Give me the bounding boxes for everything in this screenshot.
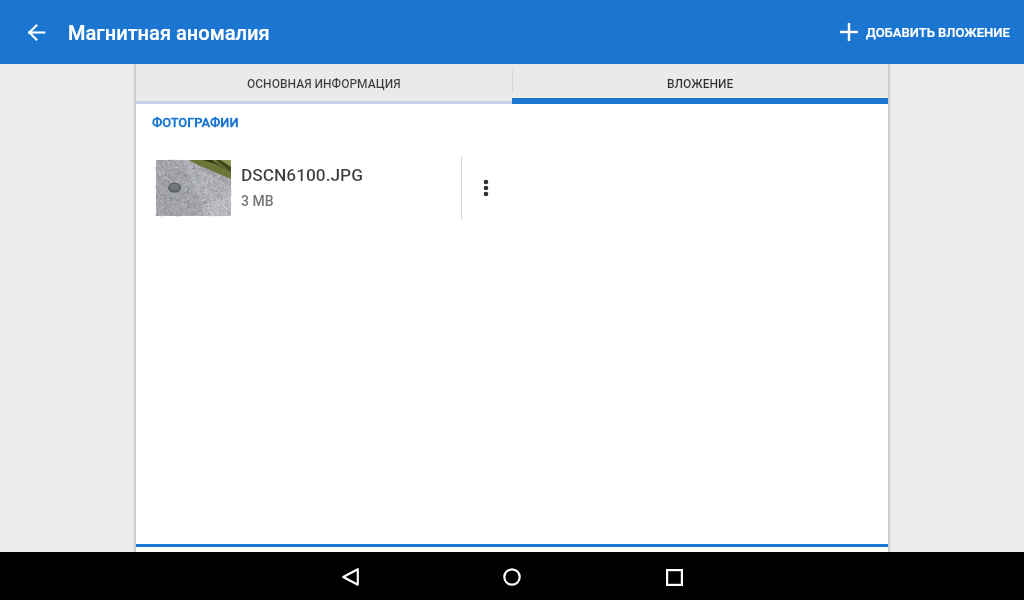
button[interactable]: More options bbox=[462, 164, 510, 212]
button[interactable]: Back bbox=[326, 553, 374, 600]
staticText: Магнитная аномалия bbox=[68, 21, 270, 44]
staticText: ДОБАВИТЬ ВЛОЖЕНИЕ bbox=[866, 25, 1010, 40]
button[interactable]: ВЛОЖЕНИЕ bbox=[512, 64, 888, 98]
button[interactable]: Back bbox=[12, 8, 60, 56]
button[interactable]: ОСНОВНАЯ ИНФОРМАЦИЯ bbox=[136, 64, 512, 98]
staticText: ФОТОГРАФИИ bbox=[152, 115, 239, 130]
staticText: DSCN6100.JPG bbox=[241, 165, 363, 185]
button[interactable]: Home bbox=[488, 553, 536, 600]
button[interactable]: Recents bbox=[650, 553, 698, 600]
staticText: ВЛОЖЕНИЕ bbox=[667, 77, 734, 91]
button[interactable]: DSCN6100.JPG bbox=[136, 156, 461, 219]
button[interactable]: ДОБАВИТЬ ВЛОЖЕНИЕ bbox=[840, 15, 1010, 49]
staticText: 3 MB bbox=[241, 193, 274, 209]
staticText: ОСНОВНАЯ ИНФОРМАЦИЯ bbox=[247, 77, 401, 91]
